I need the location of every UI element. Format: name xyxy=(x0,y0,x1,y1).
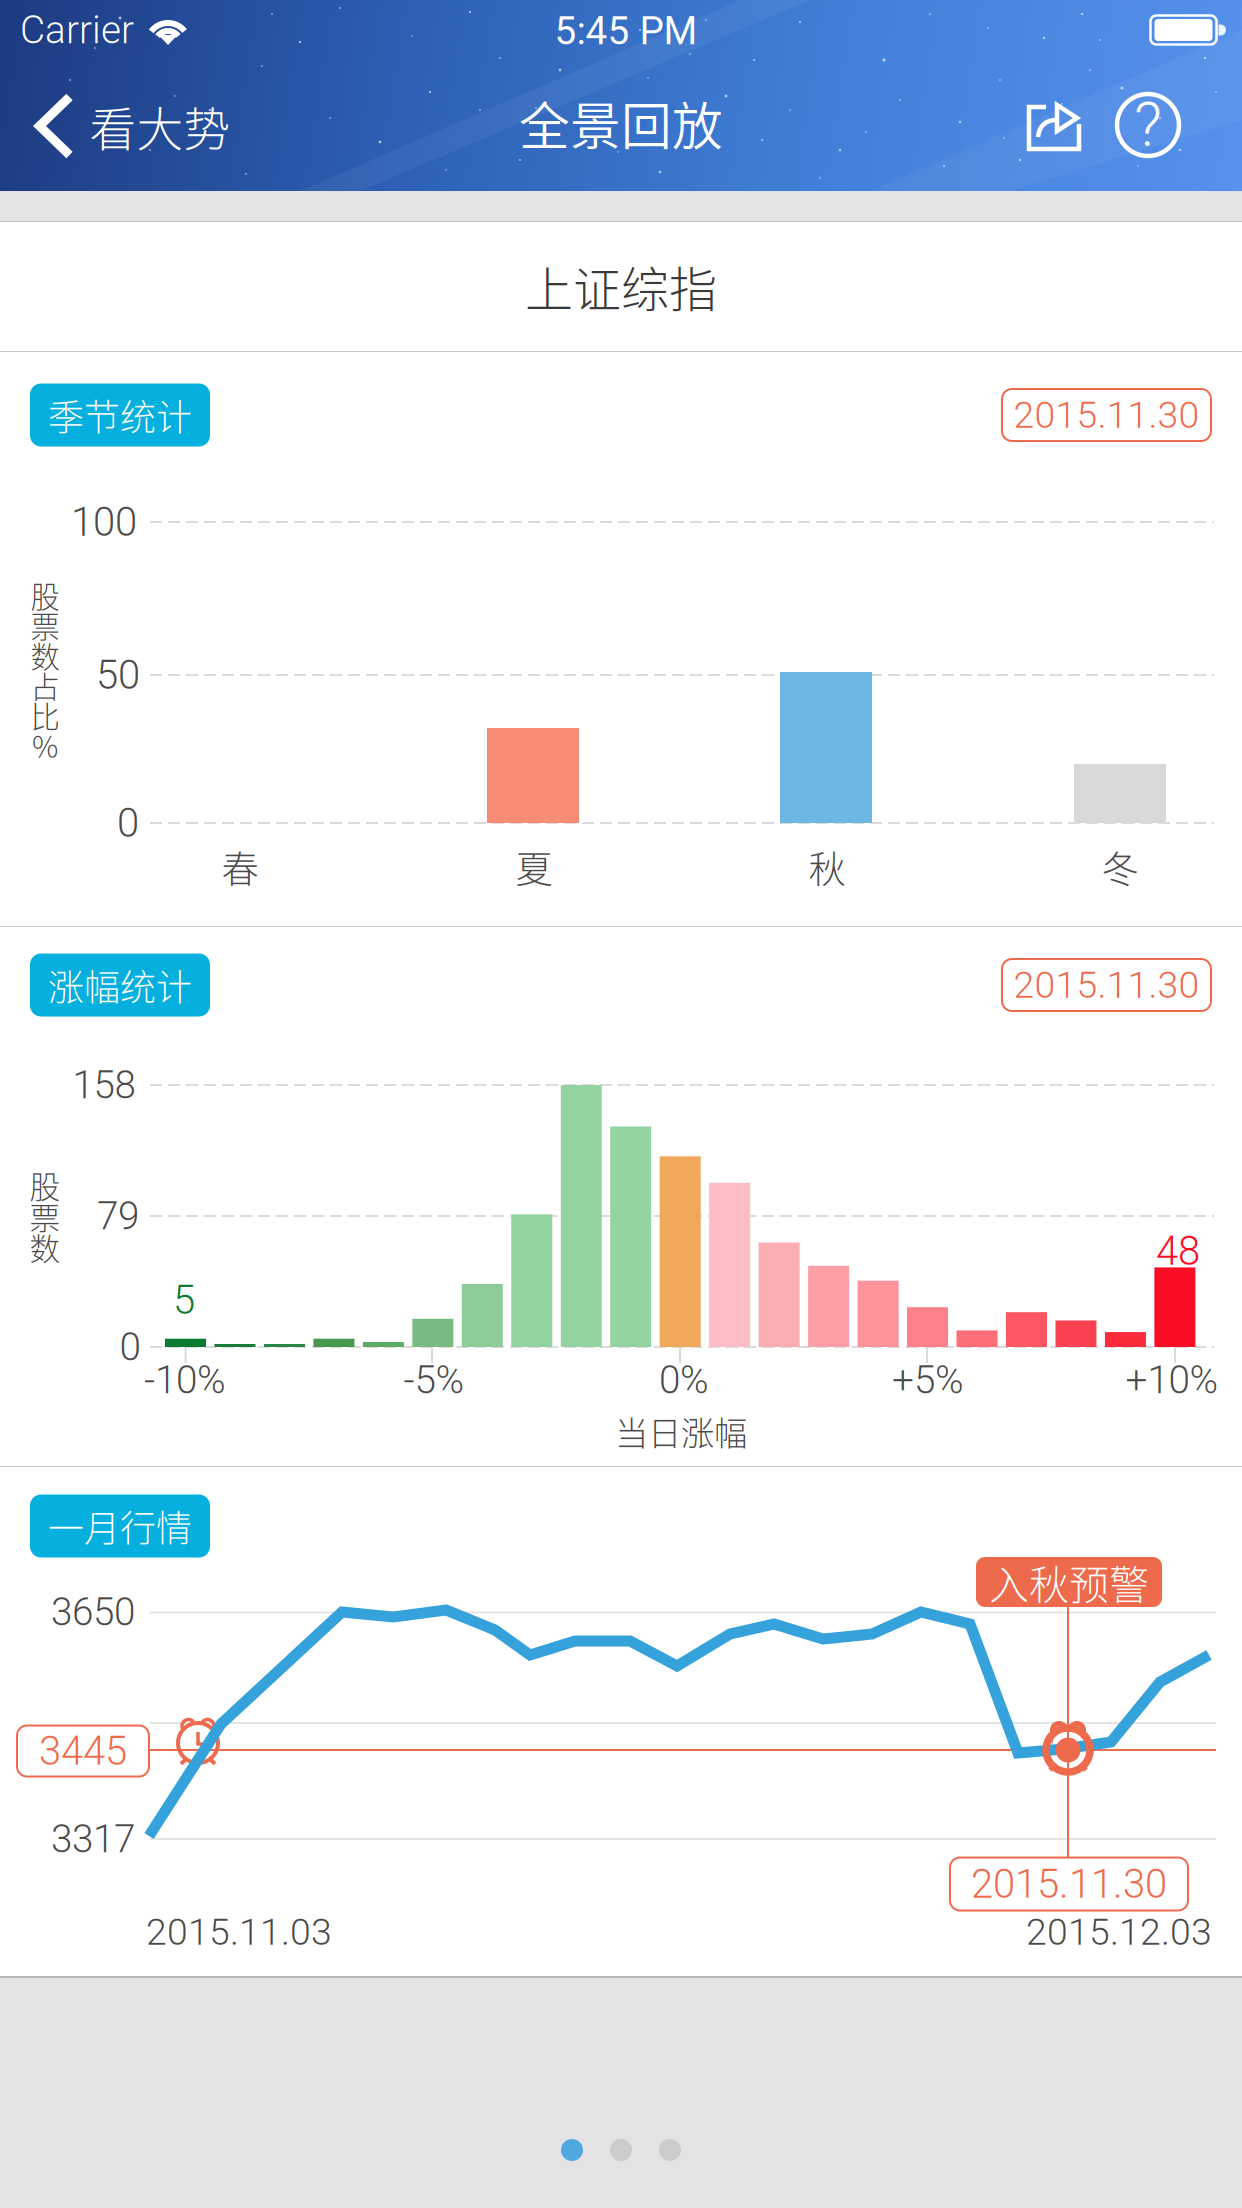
staticText: 数 xyxy=(30,634,59,676)
staticText: 入秋预警 xyxy=(989,1553,1149,1611)
button[interactable]: Help xyxy=(1097,62,1199,188)
staticText: +10% xyxy=(1125,1357,1218,1403)
staticText: 100 xyxy=(71,499,137,545)
staticText: -10% xyxy=(144,1357,226,1403)
staticText: 春 xyxy=(221,840,258,894)
staticText: 2015.11.30 xyxy=(971,1861,1167,1907)
staticText: 全景回放 xyxy=(519,86,723,160)
staticText: 5 xyxy=(173,1277,195,1323)
button[interactable]: 看大势 xyxy=(3,61,252,190)
staticText: 158 xyxy=(72,1062,135,1108)
staticText: 一月行情 xyxy=(48,1500,192,1552)
staticText: 上证综指 xyxy=(525,251,717,321)
staticText: 3650 xyxy=(51,1589,135,1635)
staticText: 涨幅统计 xyxy=(48,959,192,1011)
staticText: 3317 xyxy=(51,1816,135,1862)
staticText: 0% xyxy=(659,1357,709,1403)
staticText: -5% xyxy=(403,1357,464,1403)
staticText: 季节统计 xyxy=(48,389,192,441)
staticText: 50 xyxy=(96,652,140,698)
staticText: 夏 xyxy=(515,840,552,894)
staticText: Carrier xyxy=(20,7,134,53)
staticText: 2015.12.03 xyxy=(1026,1910,1212,1954)
staticText: 0 xyxy=(117,800,139,846)
staticText: 秋 xyxy=(808,840,845,894)
staticText: 占 xyxy=(30,664,59,706)
staticText: ? xyxy=(1134,89,1162,161)
staticText: 当日涨幅 xyxy=(615,1407,747,1455)
staticText: 2015.11.03 xyxy=(146,1910,332,1954)
staticText: 票 xyxy=(29,1194,60,1238)
staticText: 3445 xyxy=(39,1728,127,1774)
staticText: 0 xyxy=(119,1324,140,1370)
staticText: 5:45 PM xyxy=(554,8,697,54)
staticText: 2015.11.30 xyxy=(1013,393,1199,437)
staticText: % xyxy=(32,724,58,766)
staticText: 股 xyxy=(30,574,59,616)
staticText: 2015.11.30 xyxy=(1013,963,1199,1007)
staticText: 看大势 xyxy=(89,92,230,160)
staticText: +5% xyxy=(892,1357,964,1403)
staticText: 比 xyxy=(30,694,59,736)
staticText: 48 xyxy=(1156,1228,1200,1274)
staticText: 票 xyxy=(30,604,59,646)
staticText: 79 xyxy=(97,1193,139,1239)
staticText: 数 xyxy=(29,1225,60,1269)
staticText: 冬 xyxy=(1101,840,1138,894)
staticText: 股 xyxy=(29,1163,60,1207)
button[interactable]: Share xyxy=(1004,62,1106,188)
